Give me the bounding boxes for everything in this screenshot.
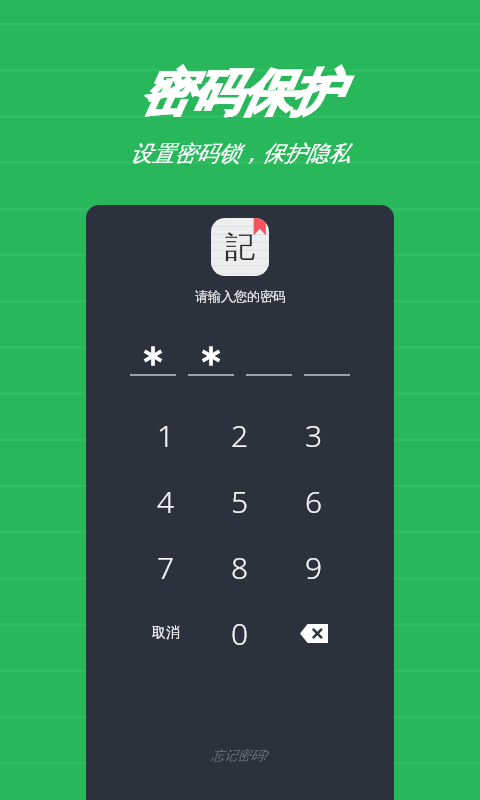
button[interactable]: 1 [129,402,203,468]
button[interactable]: 2 [203,402,277,468]
staticText: 2 [231,415,249,456]
staticText: 3 [305,415,323,456]
staticText: 4 [157,481,175,522]
button[interactable]: 6 [277,468,351,534]
staticText: 密码保护 [140,62,340,125]
button[interactable]: 4 [129,468,203,534]
staticText: 5 [231,481,249,522]
staticText: 9 [305,547,323,588]
staticText: 取消 [152,624,180,642]
button[interactable]: 7 [129,534,203,600]
staticText: 请输入您的密码 [195,288,286,304]
button[interactable]: 忘记密码? [197,738,283,772]
button[interactable]: 9 [277,534,351,600]
staticText: 記 [225,228,255,266]
button[interactable]: Backspace [277,600,351,666]
staticText: 8 [231,547,249,588]
staticText: 0 [231,613,249,654]
staticText: 7 [157,547,175,588]
staticText: 1 [157,415,175,456]
button[interactable]: 5 [203,468,277,534]
staticText: 设置密码锁，保护隐私 [130,140,350,168]
button[interactable]: 0 [203,600,277,666]
staticText: 忘记密码? [211,746,269,764]
button[interactable]: 8 [203,534,277,600]
button[interactable]: 3 [277,402,351,468]
staticText: 6 [305,481,323,522]
button[interactable]: 取消 [129,600,203,666]
